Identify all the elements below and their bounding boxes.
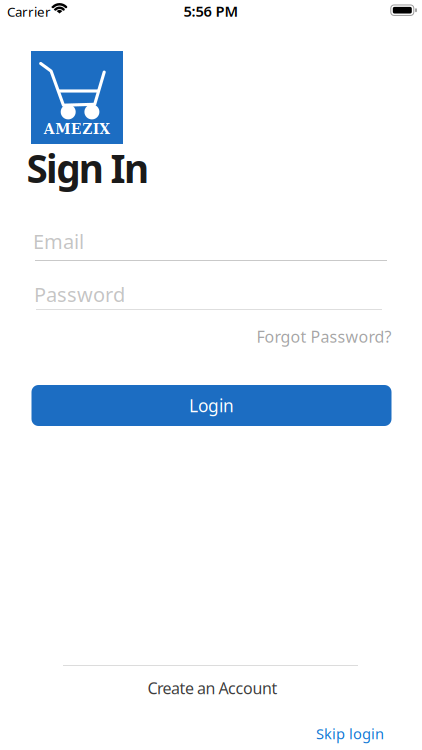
staticText: AMEZIX xyxy=(44,121,110,137)
staticText: Email xyxy=(33,228,84,255)
button[interactable]: Password xyxy=(34,281,380,310)
button[interactable]: Skip login xyxy=(224,724,384,743)
staticText: Sign In xyxy=(26,142,149,194)
staticText: Carrier xyxy=(7,3,51,20)
staticText: Create an Account xyxy=(147,677,277,699)
button[interactable]: Forgot Password? xyxy=(171,326,391,347)
staticText: Login xyxy=(189,394,234,417)
staticText: Forgot Password? xyxy=(256,326,391,347)
button[interactable]: Email xyxy=(33,228,385,261)
button[interactable]: Login xyxy=(31,385,391,426)
staticText: Skip login xyxy=(316,724,384,743)
button[interactable]: Create an Account xyxy=(147,677,277,699)
staticText: Password xyxy=(34,281,125,308)
staticText: 5:56 PM xyxy=(183,1,238,21)
